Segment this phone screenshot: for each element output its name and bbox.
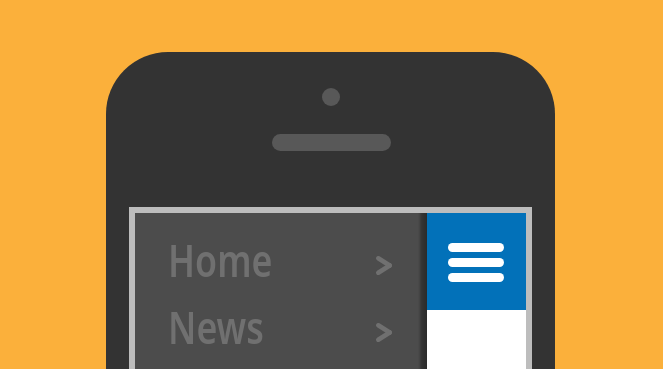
staticText: Home (168, 229, 273, 289)
staticText: News (168, 296, 264, 356)
button[interactable]: Home (135, 213, 420, 273)
button[interactable]: Open navigation menu (135, 213, 526, 310)
button[interactable]: News (135, 280, 420, 340)
button[interactable]: Open navigation menu (448, 243, 504, 282)
